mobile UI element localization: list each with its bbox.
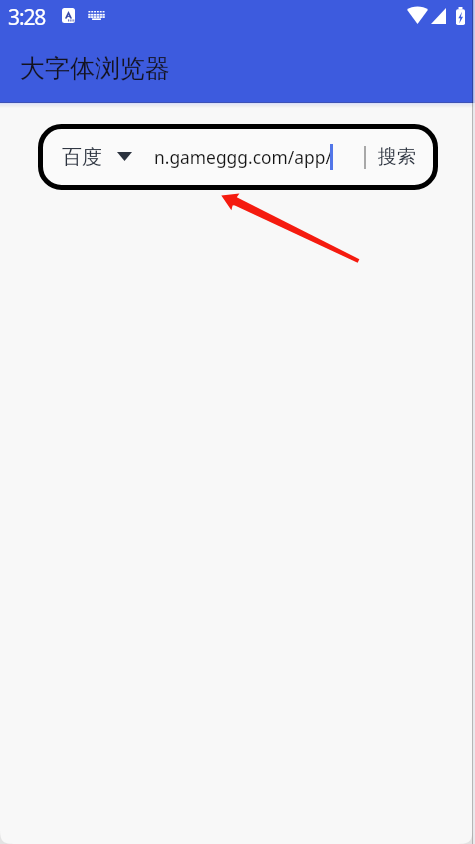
button[interactable]: 百度 <box>38 124 140 190</box>
staticText: 搜索 <box>378 145 416 169</box>
other: Keyboard <box>88 11 105 20</box>
staticText: 百度 <box>62 145 102 170</box>
staticText: n.gameggg.com/app/ <box>154 145 332 169</box>
staticText: 大字体浏览器 <box>20 53 170 84</box>
staticText: 3:28 <box>8 3 46 32</box>
button[interactable]: n.gameggg.com/app/ <box>140 124 363 190</box>
button[interactable]: 搜索 <box>365 124 438 190</box>
